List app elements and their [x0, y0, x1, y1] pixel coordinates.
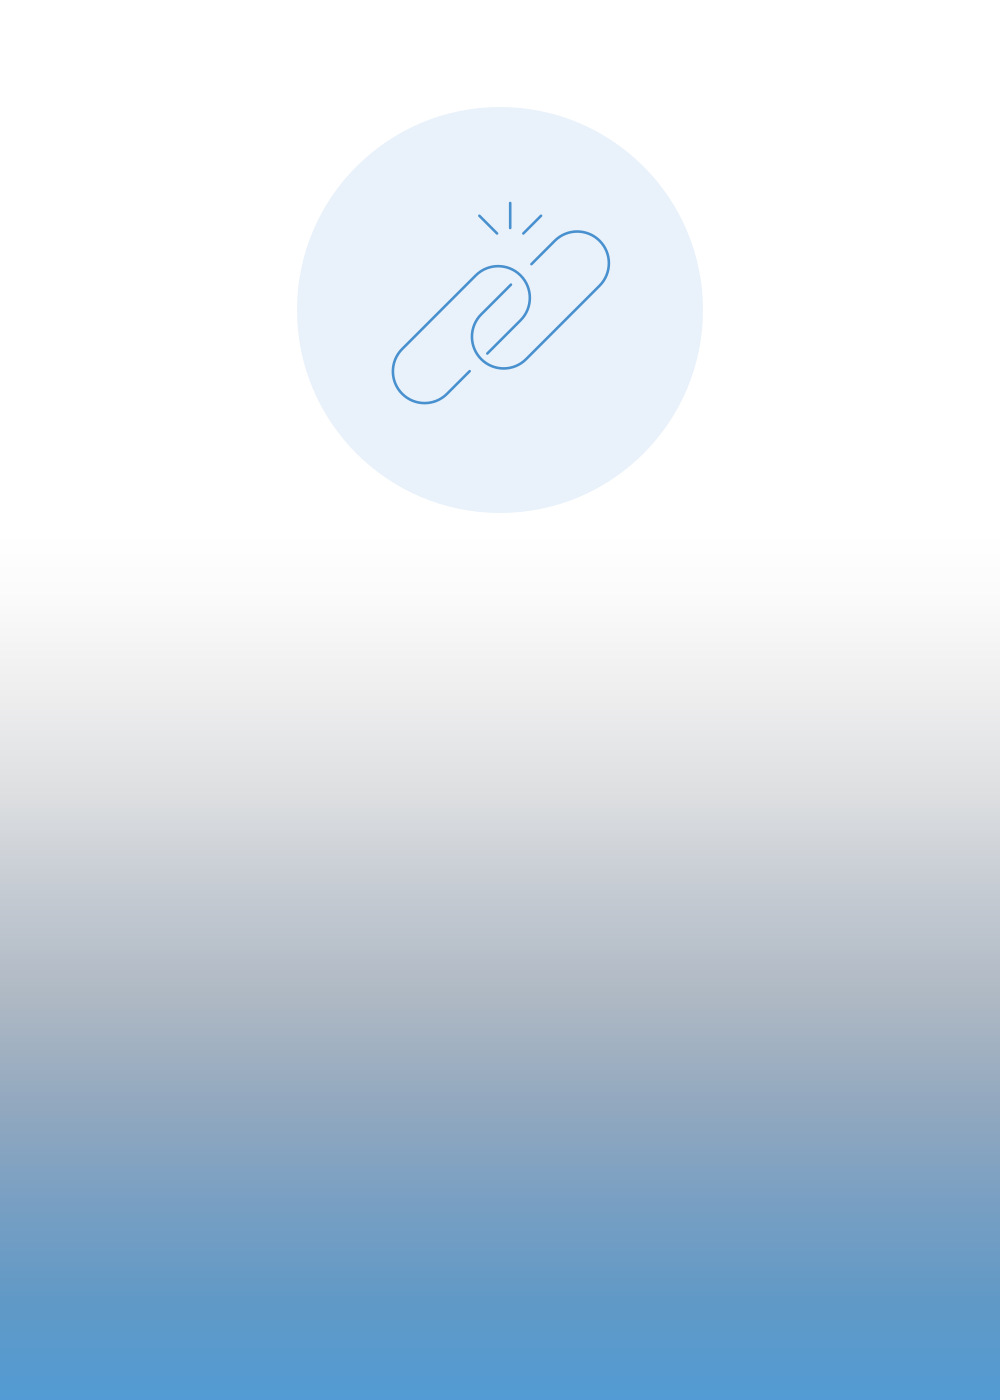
button[interactable]: Link — [297, 107, 703, 513]
